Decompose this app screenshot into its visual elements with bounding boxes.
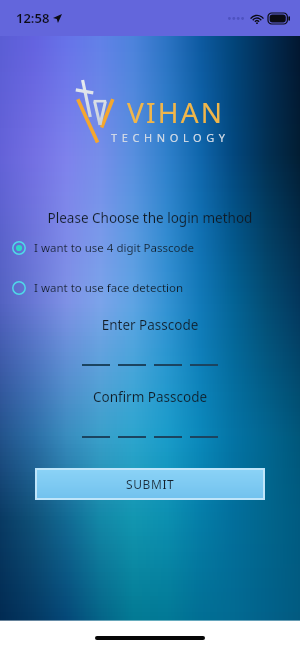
staticText: 12:58 [16,9,50,27]
staticText: VIHAN [127,93,225,131]
staticText: TECHNOLOGY [111,130,230,145]
staticText: Confirm Passcode [0,388,300,406]
staticText: Please Choose the login method [0,209,300,227]
staticText: Enter Passcode [0,316,300,334]
staticText: SUBMIT [126,476,175,492]
staticText: I want to use face detection [34,280,184,296]
button[interactable]: I want to use 4 digit Passcode [0,238,300,258]
staticText: I want to use 4 digit Passcode [34,240,195,256]
button[interactable]: I want to use face detection [0,278,300,298]
button[interactable]: SUBMIT [37,470,263,498]
